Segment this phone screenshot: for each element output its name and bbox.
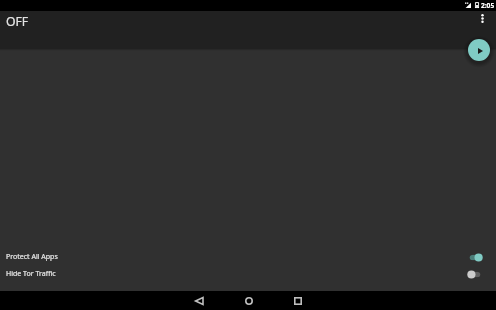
- staticText: Hide Tor Traffic: [6, 269, 56, 279]
- button[interactable]: Back: [182, 291, 215, 310]
- button[interactable]: Start: [468, 39, 490, 61]
- button[interactable]: Home: [232, 291, 265, 310]
- button[interactable]: Hide Tor Traffic: [0, 265, 496, 282]
- staticText: 2:05: [481, 1, 495, 10]
- button[interactable]: Recents: [281, 291, 314, 310]
- button[interactable]: Protect All Apps: [0, 248, 496, 265]
- staticText: Protect All Apps: [6, 252, 58, 262]
- button[interactable]: More options: [472, 8, 492, 28]
- staticText: OFF: [6, 13, 29, 30]
